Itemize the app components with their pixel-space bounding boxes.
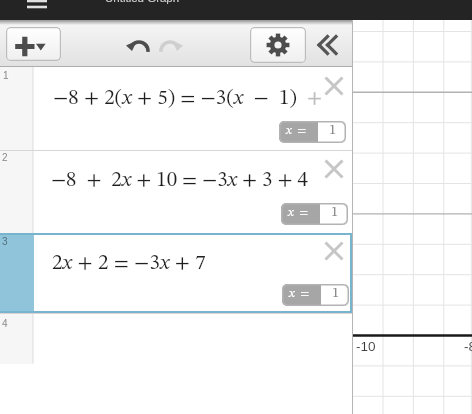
button[interactable]: [124, 38, 151, 56]
button[interactable]: −8 + 2x + 10 = −3x + 3 + 4: [0, 150, 352, 233]
staticText: −8 + 2x + 10 = −3x + 3 + 4: [51, 170, 308, 191]
staticText: x =: [288, 206, 309, 219]
staticText: Untitled Graph: [105, 0, 180, 5]
staticText: x =: [289, 287, 310, 300]
button[interactable]: −8 + 2(x + 5) = −3(x − 1) +: [0, 67, 352, 150]
staticText: -8: [464, 339, 472, 354]
button[interactable]: x =: [281, 203, 348, 225]
staticText: x =: [286, 124, 307, 137]
staticText: 4: [2, 318, 8, 329]
staticText: 2: [2, 152, 8, 163]
staticText: 2x + 2 = −3x + 7: [52, 253, 206, 274]
staticText: 1: [331, 205, 339, 220]
staticText: 3: [2, 236, 8, 247]
button[interactable]: 2x + 2 = −3x + 7: [0, 233, 352, 313]
button[interactable]: [322, 74, 346, 98]
button[interactable]: [27, 0, 48, 12]
button[interactable]: x =: [282, 284, 349, 306]
button[interactable]: [6, 27, 61, 61]
staticText: −8 + 2(x + 5) = −3(x − 1) +: [53, 88, 323, 109]
staticText: 1: [3, 70, 9, 81]
button[interactable]: [322, 239, 346, 263]
staticText: 1: [329, 123, 337, 138]
staticText: -10: [356, 339, 376, 354]
button[interactable]: Untitled Graph: [105, 0, 180, 5]
button[interactable]: [158, 38, 185, 56]
button[interactable]: [313, 32, 343, 58]
staticText: 1: [332, 286, 340, 301]
button[interactable]: [250, 27, 306, 63]
button[interactable]: x =: [279, 121, 346, 143]
button[interactable]: [322, 157, 346, 181]
